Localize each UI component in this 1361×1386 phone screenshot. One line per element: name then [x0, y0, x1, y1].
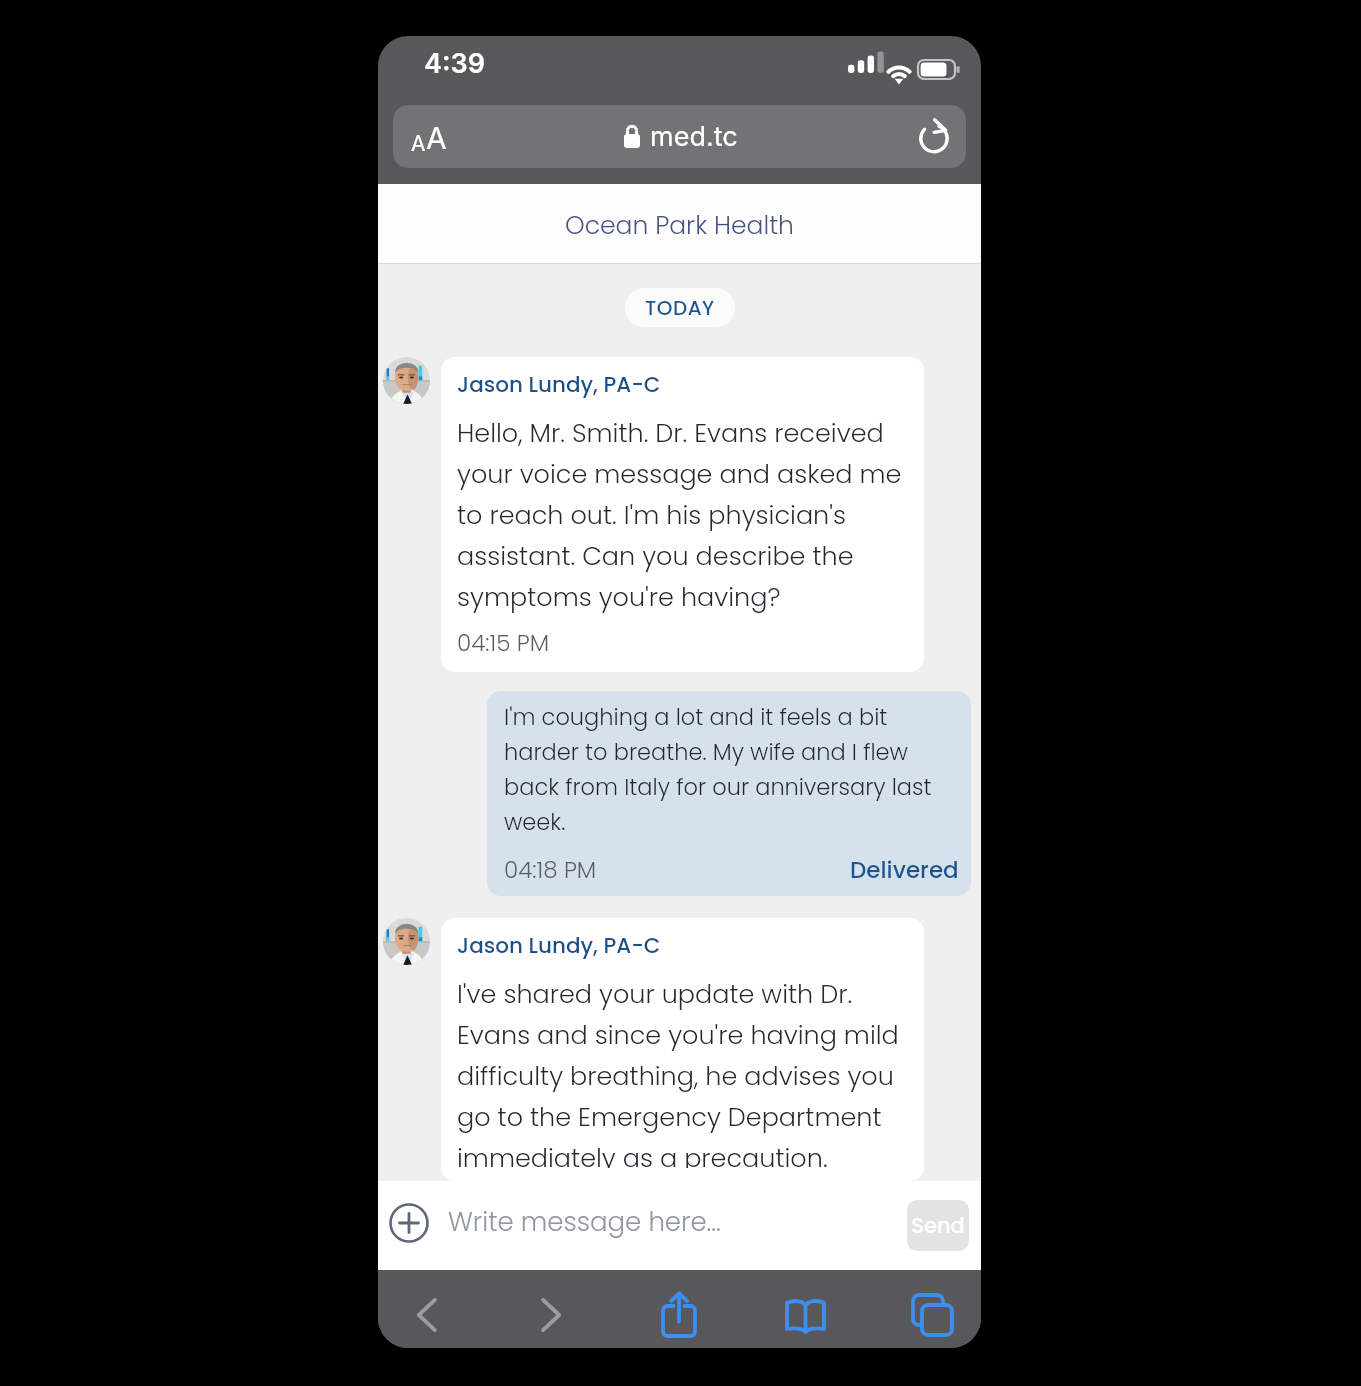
staticText: Jason Lundy, PA-C	[457, 930, 661, 960]
staticText: A	[426, 120, 447, 156]
button[interactable]: TODAY	[625, 288, 735, 327]
staticText: Hello, Mr. Smith. Dr. Evans received you…	[457, 415, 902, 615]
button[interactable]: Reload	[916, 119, 952, 155]
staticText: Jason Lundy, PA-C	[457, 369, 661, 399]
staticText: med.tc	[650, 120, 738, 153]
staticText: Write message here...	[448, 1204, 721, 1240]
staticText: 04:18 PM	[504, 854, 597, 886]
button[interactable]: Jason Lundy, PA-C	[441, 357, 924, 672]
staticText: Ocean Park Health	[565, 208, 794, 243]
button[interactable]: I'm coughing a lot and it feels a bit ha…	[487, 691, 971, 896]
button[interactable]: Jason Lundy, PA-C	[441, 918, 924, 1181]
button[interactable]: Tabs	[909, 1291, 955, 1337]
button[interactable]: A	[393, 105, 966, 168]
staticText: TODAY	[645, 294, 715, 322]
staticText: I've shared your update with Dr. Evans a…	[457, 976, 899, 1168]
button[interactable]: Share	[658, 1288, 700, 1340]
button[interactable]: Bookmarks	[784, 1296, 827, 1336]
button[interactable]: Forward	[541, 1295, 567, 1335]
staticText: A	[411, 131, 426, 156]
button[interactable]: Send	[907, 1200, 969, 1251]
staticText: Delivered	[850, 854, 959, 886]
button[interactable]: Back	[411, 1295, 437, 1335]
button[interactable]: Add attachment	[389, 1203, 429, 1243]
staticText: 4:39	[424, 47, 486, 80]
staticText: Send	[911, 1211, 965, 1240]
staticText: I'm coughing a lot and it feels a bit ha…	[504, 701, 932, 838]
staticText: 04:15 PM	[457, 627, 550, 659]
